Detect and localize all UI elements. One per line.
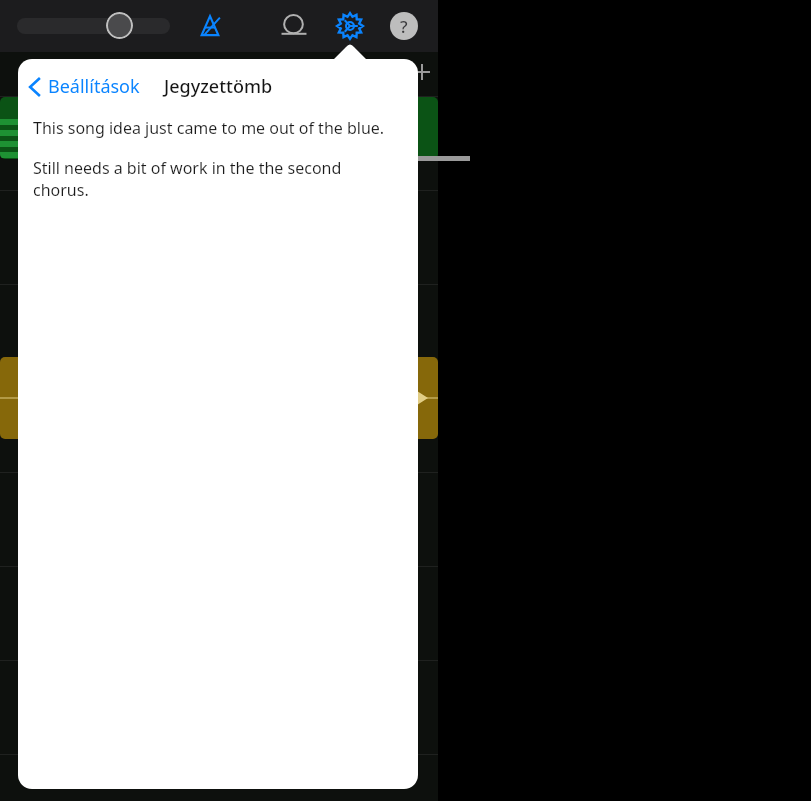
staticText: Jegyzettömb [164, 74, 273, 99]
button[interactable]: Settings [332, 8, 368, 44]
button[interactable]: Beállítások [28, 74, 140, 99]
button[interactable]: Volume slider [17, 18, 170, 34]
button[interactable]: Add track [408, 58, 436, 86]
button[interactable] [0, 357, 438, 439]
button[interactable] [0, 97, 438, 159]
staticText: Still needs a bit of work in the the sec… [33, 157, 400, 201]
staticText: ? [400, 15, 408, 38]
staticText: Beállítások [48, 74, 140, 99]
button[interactable]: Help [390, 12, 418, 40]
button[interactable]: Cycle [276, 8, 312, 44]
staticText: This song idea just came to me out of th… [33, 117, 385, 139]
button[interactable]: Metronome [192, 8, 228, 44]
